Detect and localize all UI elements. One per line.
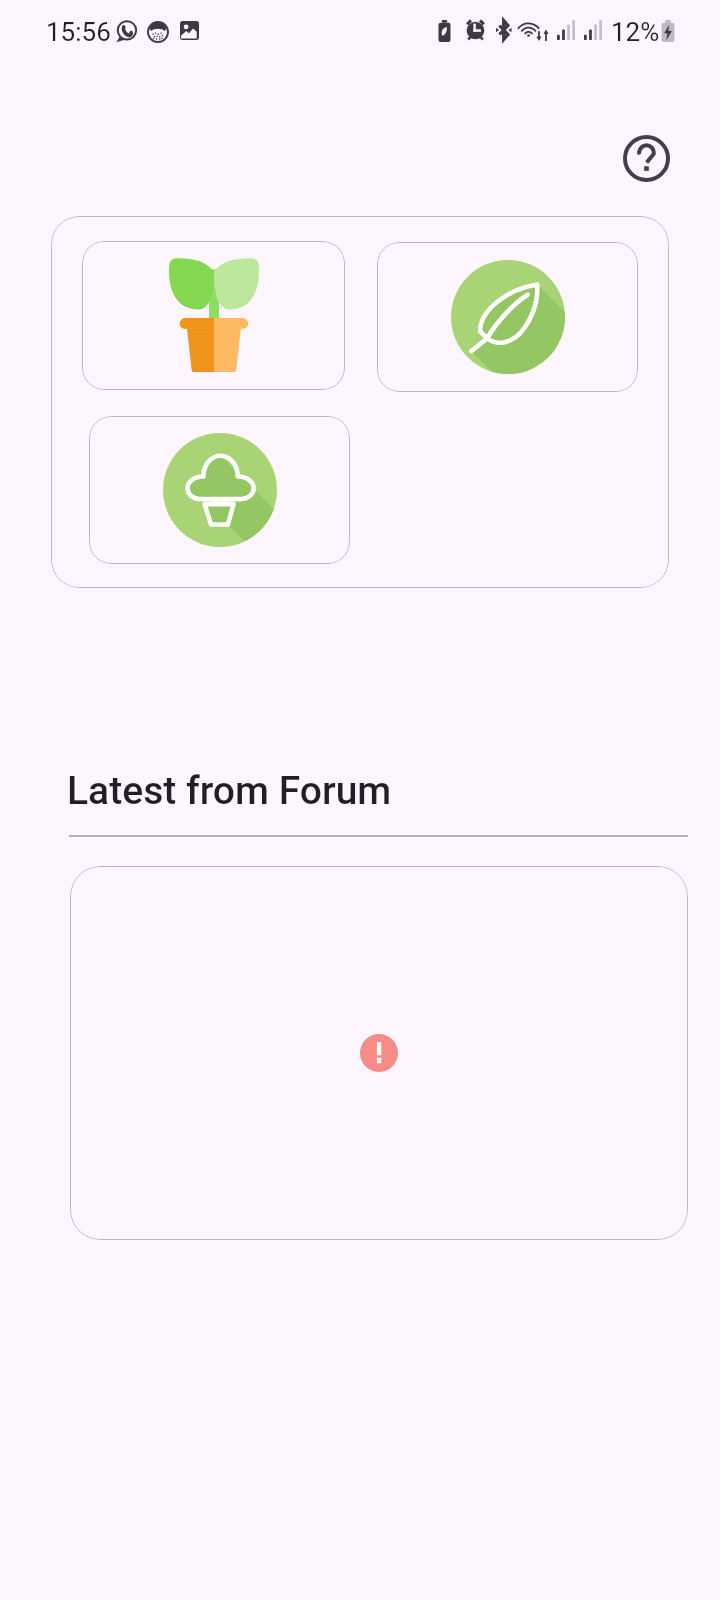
staticText: 15:56	[46, 17, 111, 47]
button[interactable]: Leaf	[377, 242, 638, 392]
staticText: Latest from Forum	[67, 768, 392, 814]
staticText: 12%	[611, 17, 660, 47]
button[interactable]: Help	[611, 123, 682, 194]
button[interactable]: Seedling	[82, 241, 345, 390]
button[interactable]: Topiary	[89, 416, 350, 564]
button[interactable]: Retry loading forum posts	[70, 866, 688, 1240]
